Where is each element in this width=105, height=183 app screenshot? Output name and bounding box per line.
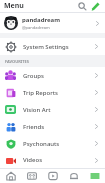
staticText: FAVOURITES: [5, 59, 29, 64]
button[interactable]: Menu: [84, 169, 105, 183]
button[interactable]: Friends: [0, 118, 105, 135]
staticText: Trip Reports: [23, 89, 93, 97]
staticText: pandadream: [22, 16, 61, 24]
staticText: @pandadream: [22, 25, 50, 30]
button[interactable]: Friends: [21, 169, 42, 183]
staticText: Videos: [23, 156, 93, 164]
staticText: System Settings: [23, 43, 93, 51]
button[interactable]: Watch: [42, 169, 63, 183]
staticText: Vision Art: [23, 106, 93, 114]
button[interactable]: Trip Reports: [0, 84, 105, 101]
button[interactable]: pandadream: [0, 13, 105, 33]
staticText: Psychonauts: [23, 140, 93, 148]
staticText: Friends: [23, 123, 93, 131]
button[interactable]: Videos: [0, 152, 105, 168]
button[interactable]: Search: [77, 1, 88, 12]
button[interactable]: Psychonauts: [0, 135, 105, 152]
button[interactable]: Notifications: [63, 169, 84, 183]
staticText: Groups: [23, 72, 93, 80]
button[interactable]: Vision Art: [0, 101, 105, 118]
button[interactable]: Groups: [0, 67, 105, 84]
staticText: Menu: [4, 1, 24, 11]
button[interactable]: Home: [0, 169, 21, 183]
button[interactable]: System Settings: [0, 38, 105, 55]
button[interactable]: Create post: [90, 1, 101, 12]
